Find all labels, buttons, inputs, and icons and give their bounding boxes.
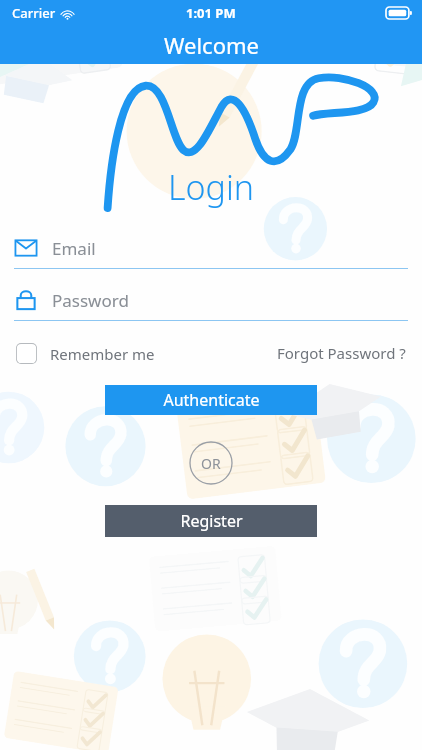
button[interactable]: Remember me	[16, 343, 155, 364]
staticText: Email	[52, 237, 96, 260]
staticText: Login	[168, 164, 255, 210]
button[interactable]: Authenticate	[105, 385, 317, 415]
staticText: 1:01 PM	[186, 4, 236, 22]
staticText: Welcome	[164, 30, 259, 60]
staticText: Remember me	[50, 344, 155, 364]
other: Email	[14, 236, 38, 260]
staticText: Authenticate	[163, 389, 260, 411]
staticText: Forgot Password ?	[277, 343, 406, 363]
button[interactable]: Password	[14, 280, 408, 320]
staticText: Password	[52, 289, 129, 312]
other: Password	[14, 288, 38, 312]
button[interactable]: Email	[14, 228, 408, 268]
button[interactable]: Register	[105, 505, 317, 537]
staticText: Carrier	[12, 4, 56, 22]
button[interactable]: Forgot Password ?	[277, 343, 406, 363]
staticText: OR	[201, 454, 221, 473]
staticText: Register	[180, 510, 243, 532]
